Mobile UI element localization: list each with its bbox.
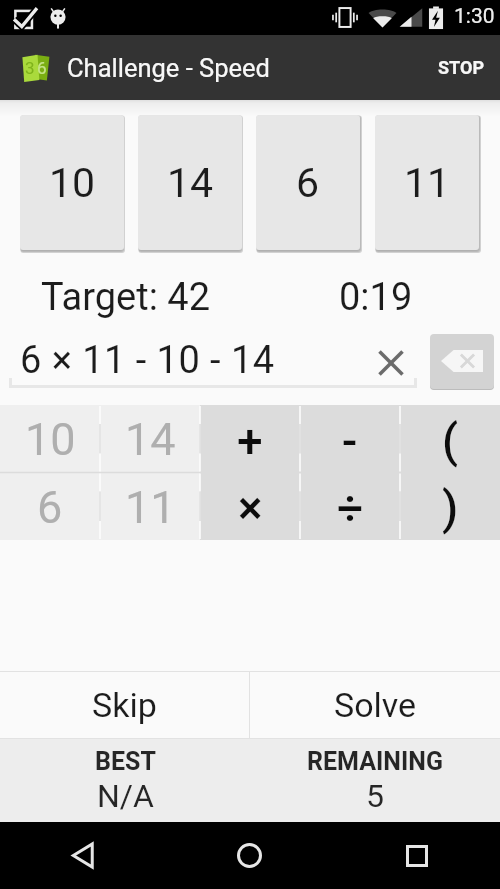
- staticText: 6: [37, 481, 63, 534]
- button[interactable]: ): [400, 472, 500, 540]
- staticText: 1:30: [454, 4, 495, 29]
- staticText: 11: [125, 481, 176, 534]
- button[interactable]: 10: [0, 405, 100, 472]
- staticText: 6 × 11 - 10 - 14: [20, 338, 275, 383]
- button[interactable]: Solve: [250, 672, 500, 738]
- staticText: 14: [125, 413, 176, 466]
- button[interactable]: 6: [256, 115, 360, 250]
- staticText: 6: [296, 159, 320, 207]
- button[interactable]: 11: [100, 472, 200, 540]
- button[interactable]: BEST: [0, 739, 250, 822]
- button[interactable]: Back: [0, 822, 166, 889]
- button[interactable]: ×: [200, 472, 300, 540]
- staticText: ×: [238, 481, 263, 535]
- staticText: 3: [25, 58, 35, 78]
- staticText: BEST: [95, 747, 156, 776]
- staticText: Challenge - Speed: [67, 53, 270, 83]
- button[interactable]: STOP: [420, 35, 500, 100]
- button[interactable]: 14: [100, 405, 200, 472]
- button[interactable]: 14: [138, 115, 242, 250]
- button[interactable]: REMAINING: [250, 739, 500, 822]
- staticText: 11: [404, 159, 451, 207]
- staticText: (: [442, 414, 459, 468]
- staticText: Solve: [334, 685, 417, 725]
- button[interactable]: ÷: [300, 472, 400, 540]
- staticText: ): [442, 481, 459, 535]
- staticText: N/A: [97, 777, 154, 815]
- staticText: Skip: [92, 685, 157, 725]
- staticText: 5: [366, 777, 384, 815]
- button[interactable]: Backspace: [430, 334, 494, 392]
- staticText: ÷: [337, 481, 364, 535]
- button[interactable]: 10: [20, 115, 124, 250]
- staticText: +: [237, 414, 263, 468]
- staticText: 10: [25, 413, 76, 466]
- button[interactable]: +: [200, 405, 300, 472]
- button[interactable]: Skip: [0, 672, 249, 738]
- button[interactable]: Clear expression: [368, 340, 413, 385]
- staticText: REMAINING: [307, 747, 443, 776]
- button[interactable]: 6: [0, 472, 100, 540]
- staticText: 0:19: [339, 275, 413, 320]
- staticText: STOP: [438, 57, 485, 78]
- button[interactable]: Home: [166, 822, 333, 889]
- staticText: -: [342, 414, 358, 468]
- button[interactable]: (: [400, 405, 500, 472]
- staticText: 6: [37, 58, 47, 78]
- staticText: 14: [167, 159, 214, 207]
- button[interactable]: Recent apps: [333, 822, 500, 889]
- staticText: Target: 42: [41, 275, 211, 320]
- button[interactable]: 11: [375, 115, 479, 250]
- button[interactable]: -: [300, 405, 400, 472]
- staticText: 10: [49, 159, 96, 207]
